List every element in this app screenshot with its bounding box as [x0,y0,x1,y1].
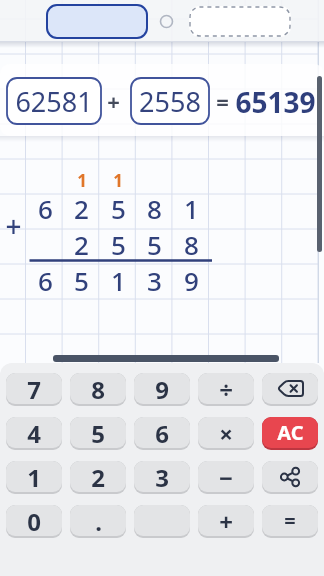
staticText: 1 [77,169,87,192]
staticText: 1 [27,461,41,492]
staticText: 2 [74,227,89,262]
button[interactable] [46,4,148,39]
staticText: − [219,461,233,492]
button[interactable] [53,355,279,362]
staticText: 9 [184,263,199,298]
staticText: 2 [74,191,89,226]
button[interactable]: 9 [134,373,190,406]
staticText: 6 [38,191,53,226]
button[interactable]: × [198,417,254,450]
button[interactable]: 1 [6,461,62,494]
staticText: 8 [184,227,199,262]
staticText: + [107,86,120,116]
button[interactable]: 5 [70,417,126,450]
staticText: . [95,505,102,536]
button[interactable]: 3 [134,461,190,494]
staticText: × [219,417,233,448]
staticText: 5 [74,263,89,298]
button[interactable]: = [262,505,318,538]
button[interactable]: AC [262,417,318,450]
button[interactable] [130,77,210,125]
staticText: + [219,505,233,536]
staticText: 5 [111,227,126,262]
staticText: 6 [155,417,169,448]
staticText: 2 [91,461,105,492]
staticText: 4 [27,417,41,448]
button[interactable] [134,505,190,538]
staticText: 2558 [139,83,201,120]
staticText: 1 [184,191,199,226]
button[interactable]: + [198,505,254,538]
staticText: 9 [155,373,169,404]
button[interactable]: − [198,461,254,494]
button[interactable] [262,373,318,406]
staticText: 1 [111,263,126,298]
staticText: ÷ [219,373,233,404]
button[interactable] [189,6,291,37]
staticText: 5 [147,227,162,262]
staticText: 65139 [235,83,316,121]
button[interactable]: ÷ [198,373,254,406]
staticText: 6 [38,263,53,298]
staticText: 5 [111,191,126,226]
staticText: 3 [147,263,162,298]
staticText: 1 [113,169,123,192]
staticText: = [216,86,229,116]
button[interactable]: 2 [70,461,126,494]
staticText: 62581 [15,83,93,120]
staticText: 3 [155,461,169,492]
staticText: 8 [91,373,105,404]
button[interactable]: 4 [6,417,62,450]
staticText: 0 [27,505,41,536]
staticText: = [284,507,296,534]
staticText: 8 [147,191,162,226]
button[interactable]: 8 [70,373,126,406]
button[interactable]: 6 [134,417,190,450]
button[interactable]: . [70,505,126,538]
staticText: 7 [27,373,41,404]
staticText: AC [277,419,304,446]
button[interactable] [6,77,102,125]
button[interactable] [262,461,318,494]
button[interactable]: 0 [6,505,62,538]
button[interactable]: 7 [6,373,62,406]
staticText: + [5,207,22,245]
staticText: 5 [91,417,105,448]
